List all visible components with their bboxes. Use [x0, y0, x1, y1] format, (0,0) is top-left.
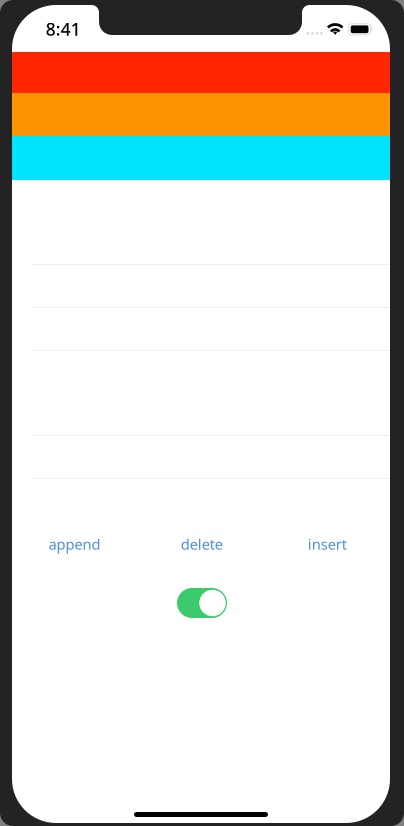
staticText: delete — [181, 534, 223, 554]
button[interactable]: Toggle — [177, 588, 227, 618]
staticText: 8:41 — [46, 17, 81, 40]
button[interactable]: insert — [298, 527, 357, 561]
staticText: insert — [308, 534, 347, 554]
staticText: append — [49, 534, 101, 554]
button[interactable]: append — [39, 527, 111, 561]
button[interactable]: delete — [171, 527, 233, 561]
